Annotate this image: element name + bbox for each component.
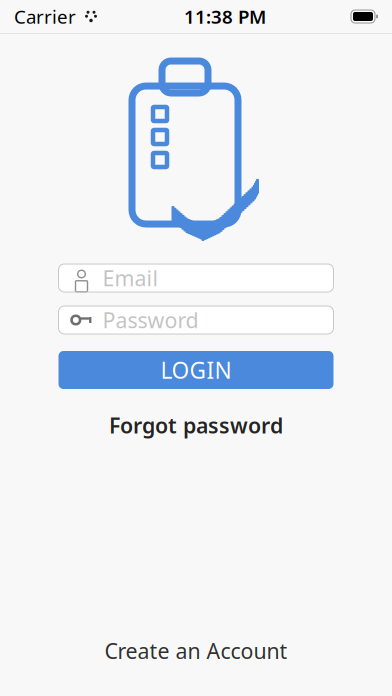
button[interactable]: Email (58, 264, 333, 292)
button[interactable]: Create an Account (88, 629, 303, 673)
button[interactable]: Password (58, 306, 333, 334)
staticText: Create an Account (104, 637, 287, 665)
staticText: 11:38 PM (184, 4, 266, 29)
staticText: Password (102, 306, 198, 334)
button[interactable]: LOGIN (58, 351, 333, 389)
staticText: Forgot password (109, 411, 283, 439)
staticText: Email (102, 264, 158, 292)
staticText: Carrier (14, 4, 76, 29)
button[interactable]: Forgot password (95, 405, 297, 445)
staticText: LOGIN (160, 355, 231, 385)
